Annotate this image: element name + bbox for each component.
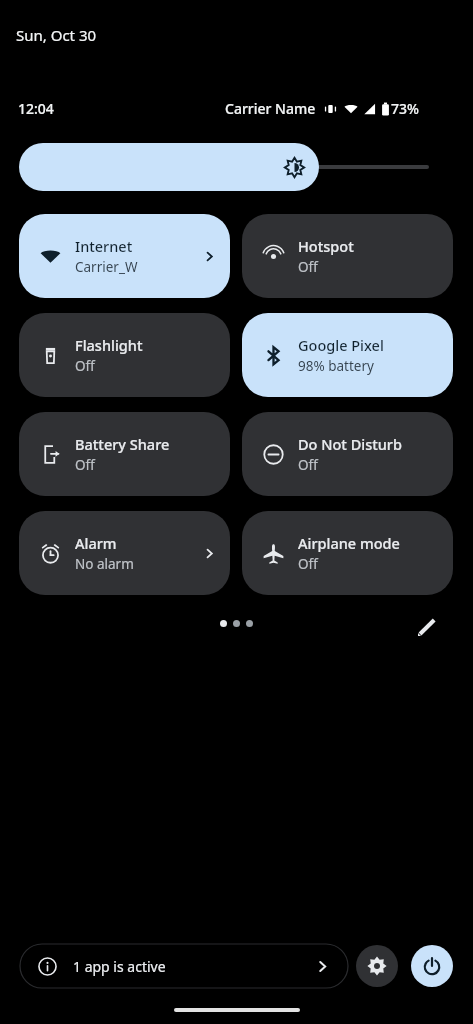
- button[interactable]: 1 app is active: [20, 944, 348, 988]
- button[interactable]: Do Not Disturb: [242, 412, 453, 496]
- staticText: Battery Share: [75, 434, 170, 454]
- staticText: Alarm: [75, 533, 117, 553]
- staticText: Off: [75, 456, 95, 474]
- staticText: No alarm set: [75, 555, 139, 573]
- button[interactable]: Hotspot: [242, 214, 453, 298]
- staticText: Google Pixel Watch: [298, 335, 428, 355]
- staticText: 73%: [391, 99, 419, 118]
- staticText: Do Not Disturb: [298, 434, 402, 454]
- button[interactable]: Battery Share: [19, 412, 230, 496]
- staticText: Airplane mode: [298, 533, 400, 553]
- staticText: Internet: [75, 236, 133, 256]
- button[interactable]: Alarm: [19, 511, 230, 595]
- staticText: Sun, Oct 30: [16, 25, 97, 45]
- staticText: 12:04: [18, 99, 54, 118]
- staticText: Flashlight: [75, 335, 143, 355]
- staticText: Off: [298, 456, 318, 474]
- staticText: Off: [298, 555, 318, 573]
- button[interactable]: Airplane mode: [242, 511, 453, 595]
- staticText: Off: [298, 258, 318, 276]
- staticText: 98% battery: [298, 357, 374, 375]
- button[interactable]: Settings: [356, 945, 398, 987]
- staticText: Off: [75, 357, 95, 375]
- button[interactable]: Power: [411, 945, 453, 987]
- button[interactable]: Edit tiles: [407, 607, 447, 647]
- button[interactable]: Google Pixel Watch: [242, 313, 453, 397]
- button[interactable]: Brightness: [19, 143, 430, 191]
- staticText: 1 app is active: [73, 957, 166, 976]
- staticText: Carrier_Wi-Fi_N…: [75, 258, 139, 276]
- staticText: Carrier Name: [225, 99, 316, 118]
- button[interactable]: Internet: [19, 214, 230, 298]
- staticText: Hotspot: [298, 236, 354, 256]
- button[interactable]: Flashlight: [19, 313, 230, 397]
